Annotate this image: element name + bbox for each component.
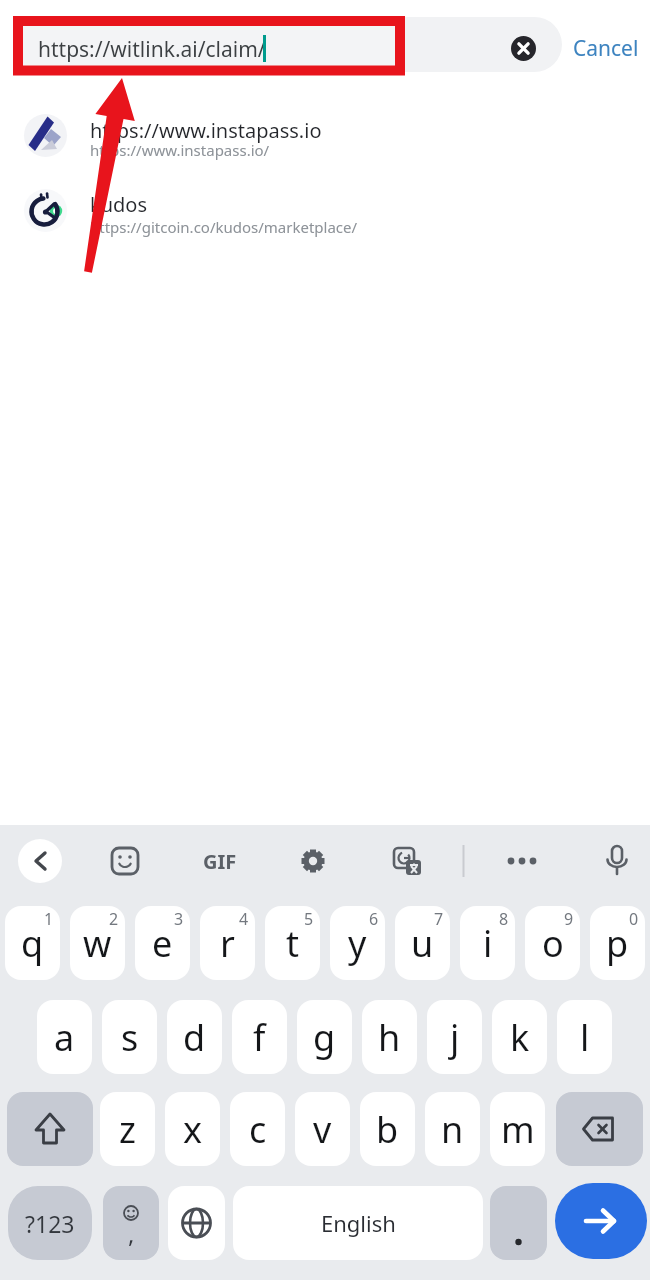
staticText: x — [183, 1105, 203, 1154]
button[interactable]: v — [295, 1092, 350, 1166]
staticText: b — [376, 1105, 399, 1154]
staticText: k — [510, 1013, 530, 1062]
button[interactable] — [103, 839, 147, 883]
staticText: t — [286, 919, 299, 968]
button[interactable]: kudos — [0, 178, 650, 244]
button[interactable]: f — [232, 1000, 287, 1074]
button[interactable]: s — [102, 1000, 157, 1074]
staticText: 5 — [304, 908, 314, 930]
staticText: h — [378, 1013, 401, 1062]
staticText: English — [321, 1208, 396, 1238]
button[interactable] — [595, 839, 639, 883]
button[interactable] — [555, 1183, 647, 1259]
button[interactable] — [490, 1186, 547, 1260]
button[interactable]: h — [362, 1000, 417, 1074]
button[interactable]: r — [200, 906, 255, 980]
button[interactable] — [511, 36, 536, 61]
staticText: m — [501, 1105, 535, 1154]
button[interactable]: j — [427, 1000, 482, 1074]
button[interactable]: q — [5, 906, 60, 980]
button[interactable] — [385, 839, 429, 883]
staticText: z — [119, 1105, 136, 1154]
staticText: https://gitcoin.co/kudos/marketplace/ — [90, 217, 358, 237]
button[interactable]: t — [265, 906, 320, 980]
staticText: p — [606, 919, 629, 968]
staticText: https://witlink.ai/claim/ — [38, 35, 266, 64]
button[interactable]: i — [460, 906, 515, 980]
staticText: 2 — [109, 908, 119, 930]
button[interactable]: g — [297, 1000, 352, 1074]
button[interactable]: b — [360, 1092, 415, 1166]
button[interactable]: p — [590, 906, 645, 980]
button[interactable]: GIF — [192, 839, 247, 883]
staticText: , — [128, 1217, 135, 1250]
staticText: ?123 — [25, 1208, 75, 1239]
staticText: s — [121, 1013, 139, 1062]
button[interactable]: Cancel — [566, 30, 646, 66]
staticText: 9 — [564, 908, 574, 930]
staticText: 1 — [44, 908, 54, 930]
staticText: y — [348, 919, 367, 968]
staticText: j — [450, 1013, 460, 1062]
staticText: o — [542, 919, 564, 968]
staticText: v — [313, 1105, 332, 1154]
button[interactable]: a — [37, 1000, 92, 1074]
staticText: g — [313, 1013, 336, 1062]
button[interactable]: l — [557, 1000, 612, 1074]
staticText: https://www.instapass.io — [90, 117, 322, 144]
staticText: f — [253, 1013, 266, 1062]
staticText: 0 — [629, 908, 639, 930]
staticText: u — [411, 919, 434, 968]
staticText: c — [249, 1105, 267, 1154]
button[interactable]: English — [233, 1186, 483, 1260]
button[interactable]: z — [100, 1092, 155, 1166]
button[interactable]: e — [135, 906, 190, 980]
staticText: l — [580, 1013, 590, 1062]
button[interactable]: u — [395, 906, 450, 980]
button[interactable]: w — [70, 906, 125, 980]
staticText: https://www.instapass.io/ — [90, 140, 270, 160]
staticText: q — [21, 919, 44, 968]
button[interactable]: ?123 — [8, 1186, 92, 1260]
staticText: Cancel — [573, 34, 639, 63]
button[interactable]: k — [492, 1000, 547, 1074]
staticText: 6 — [369, 908, 379, 930]
staticText: 3 — [174, 908, 184, 930]
button[interactable]: x — [165, 1092, 220, 1166]
button[interactable]: c — [230, 1092, 285, 1166]
button[interactable]: https://www.instapass.io — [0, 104, 650, 170]
button[interactable] — [15, 17, 562, 72]
staticText: d — [183, 1013, 206, 1062]
button[interactable]: y — [330, 906, 385, 980]
staticText: e — [152, 919, 173, 968]
staticText: w — [83, 919, 112, 968]
staticText: GIF — [203, 848, 237, 875]
button[interactable] — [556, 1092, 643, 1166]
button[interactable] — [500, 839, 544, 883]
staticText: a — [54, 1013, 75, 1062]
staticText: i — [483, 919, 493, 968]
button[interactable]: n — [425, 1092, 480, 1166]
staticText: n — [441, 1105, 464, 1154]
staticText: r — [220, 919, 235, 968]
button[interactable] — [18, 839, 62, 883]
staticText: 7 — [434, 908, 444, 930]
button[interactable] — [291, 839, 335, 883]
button[interactable]: , — [103, 1186, 159, 1260]
button[interactable] — [168, 1186, 225, 1260]
button[interactable]: m — [490, 1092, 545, 1166]
staticText: 4 — [239, 908, 249, 930]
button[interactable] — [7, 1092, 93, 1166]
button[interactable]: d — [167, 1000, 222, 1074]
button[interactable]: o — [525, 906, 580, 980]
staticText: 8 — [499, 908, 509, 930]
staticText: kudos — [90, 191, 148, 218]
